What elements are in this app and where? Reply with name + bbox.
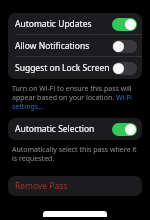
button[interactable]: Automatic Updates — [112, 18, 137, 31]
staticText: Automatically select this pass where it … — [12, 145, 138, 163]
staticText: Turn on Wi-Fi to ensure this pass will a… — [12, 84, 138, 111]
button[interactable]: Suggest on Lock Screen — [112, 62, 137, 75]
staticText: Automatic Updates — [15, 18, 112, 30]
button[interactable]: Automatic Selection — [112, 123, 137, 136]
button[interactable]: Remove Pass — [8, 176, 142, 196]
button[interactable]: Automatic Updates — [8, 13, 142, 35]
button[interactable]: Allow Notifications — [112, 40, 137, 53]
staticText: Automatic Selection — [15, 123, 112, 135]
button[interactable]: Allow Notifications — [8, 35, 142, 57]
button[interactable]: Suggest on Lock Screen — [8, 57, 142, 79]
button[interactable]: Automatic Selection — [8, 118, 142, 140]
staticText: Allow Notifications — [15, 40, 112, 52]
staticText: Suggest on Lock Screen — [15, 62, 112, 74]
staticText: Remove Pass — [15, 180, 68, 192]
